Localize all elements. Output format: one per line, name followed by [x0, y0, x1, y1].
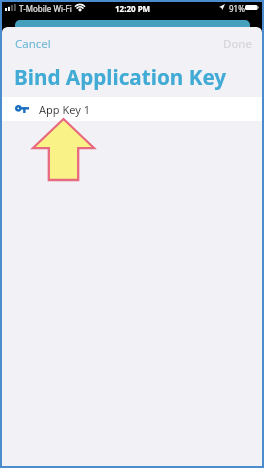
- staticText: T-Mobile Wi-Fi: [19, 3, 72, 14]
- other: Battery: [245, 5, 259, 10]
- staticText: Done: [223, 36, 252, 52]
- other: Wi-Fi: [75, 4, 85, 11]
- button[interactable]: Done: [213, 31, 262, 57]
- button[interactable]: Application key: [2, 97, 262, 121]
- other: Pointer: [33, 119, 94, 180]
- staticText: App Key 1: [39, 102, 90, 117]
- other: Location: [219, 4, 225, 10]
- staticText: Bind Application Key: [14, 63, 227, 91]
- staticText: 91%: [229, 3, 245, 14]
- other: Application key: [15, 105, 29, 113]
- button[interactable]: Cancel: [2, 31, 64, 57]
- staticText: 12:20 PM: [115, 3, 151, 14]
- staticText: Cancel: [15, 36, 51, 52]
- other: Cellular signal: [5, 4, 16, 11]
